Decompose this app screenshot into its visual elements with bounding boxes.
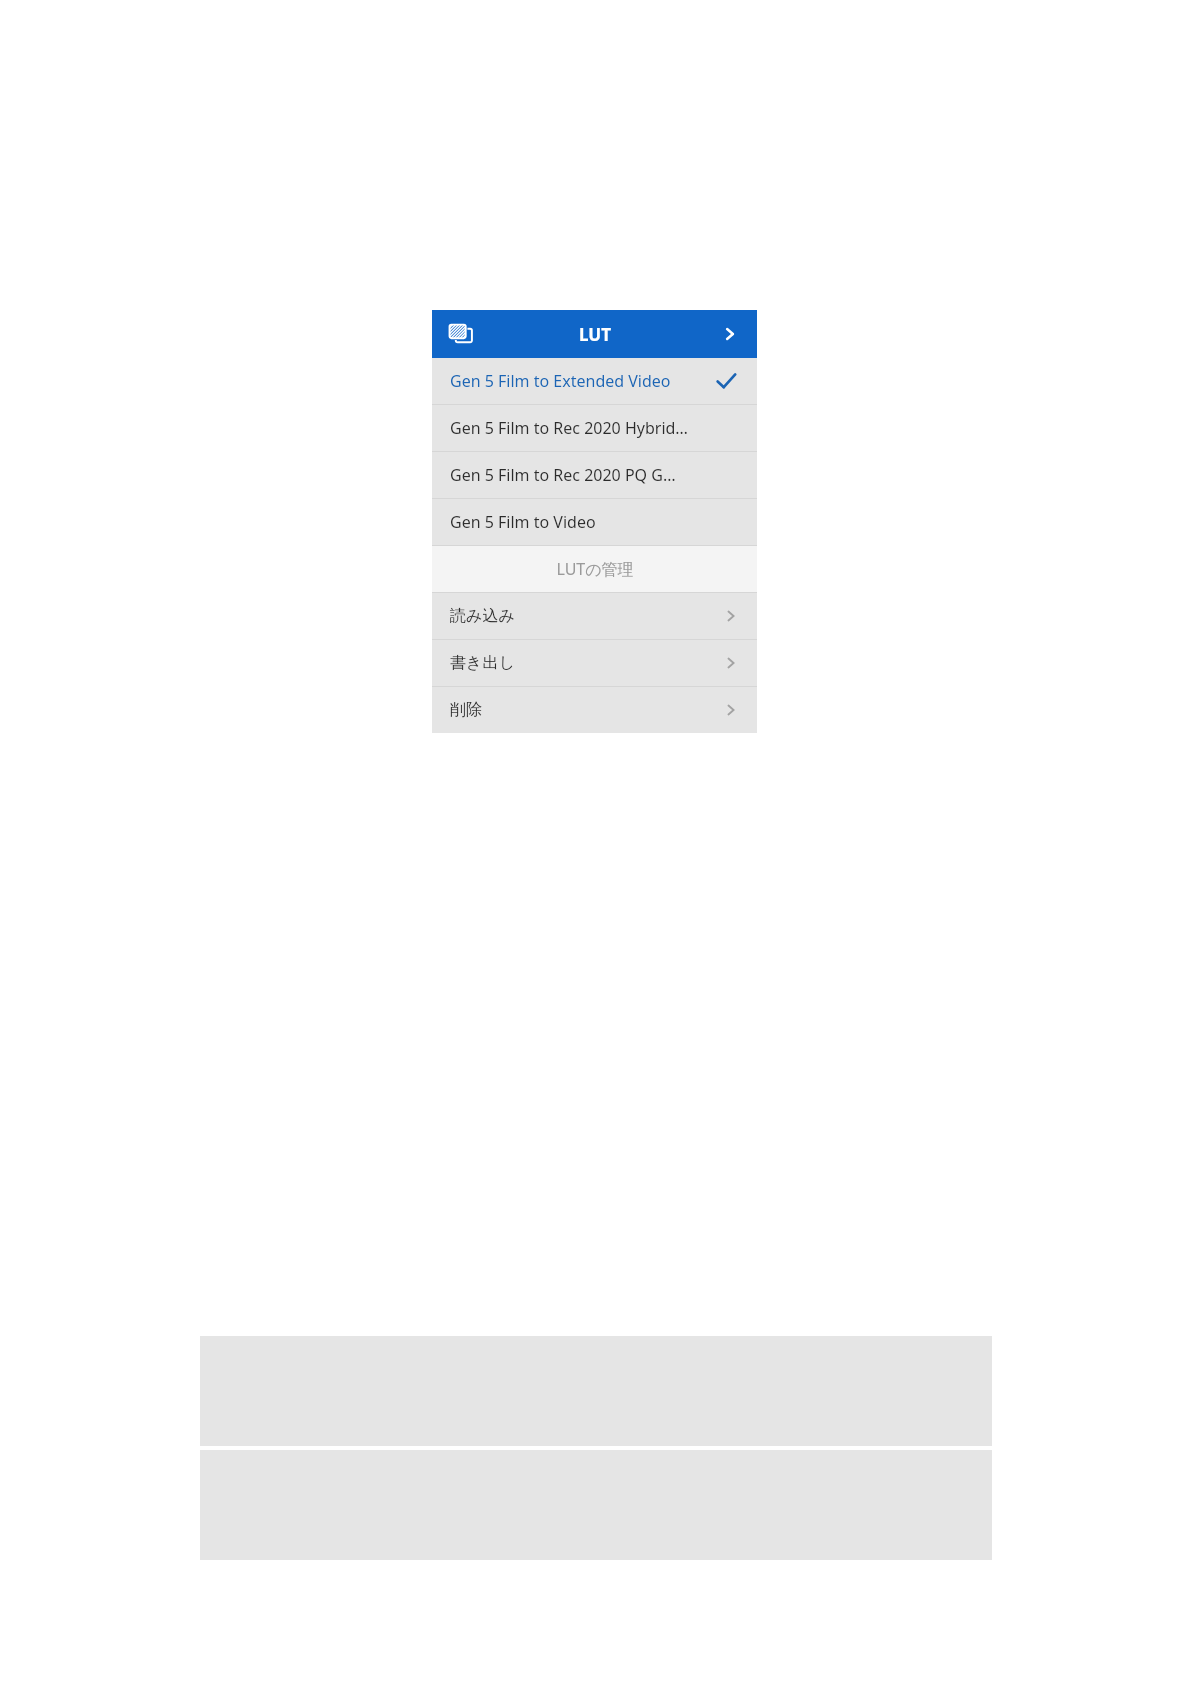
button[interactable]: LUT: [432, 310, 757, 358]
staticText: Gen 5 Film to Extended Video: [450, 370, 671, 392]
button[interactable]: Gen 5 Film to Rec 2020 PQ G…: [432, 452, 757, 498]
staticText: LUT: [579, 323, 611, 346]
other: More: [721, 325, 739, 343]
button[interactable]: Gen 5 Film to Video: [432, 499, 757, 545]
button[interactable]: Gen 5 Film to Rec 2020 Hybrid…: [432, 405, 757, 451]
other: LUT: [448, 321, 474, 347]
staticText: Gen 5 Film to Rec 2020 PQ G…: [450, 464, 676, 486]
button[interactable]: 書き出し: [432, 640, 757, 686]
button[interactable]: Gen 5 Film to Extended Video: [432, 358, 757, 404]
staticText: 読み込み: [450, 606, 515, 626]
staticText: Gen 5 Film to Video: [450, 511, 596, 533]
button[interactable]: 削除: [432, 687, 757, 733]
staticText: LUTの管理: [556, 558, 634, 580]
staticText: 削除: [450, 700, 482, 720]
staticText: Gen 5 Film to Rec 2020 Hybrid…: [450, 417, 689, 439]
button[interactable]: LUTの管理: [432, 546, 757, 592]
button[interactable]: 読み込み: [432, 593, 757, 639]
staticText: 書き出し: [450, 653, 515, 673]
